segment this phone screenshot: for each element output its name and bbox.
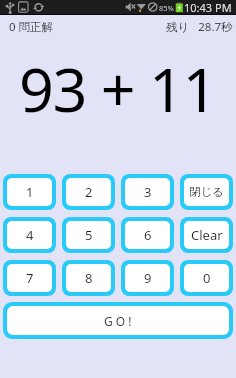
staticText: 閉じる [189,185,225,199]
button[interactable]: 7 [7,264,52,292]
button[interactable]: 1 [7,178,52,206]
staticText: 0 [203,269,211,287]
staticText: 残り 28.7秒 [166,19,233,35]
staticText: 9 [144,269,152,287]
button[interactable]: Clear [184,221,229,249]
button[interactable]: G O ! [7,306,229,335]
button[interactable]: 3 [125,178,170,206]
button[interactable]: 2 [66,178,111,206]
button[interactable]: 8 [66,264,111,292]
staticText: 6 [144,226,152,244]
staticText: 2 [85,183,93,201]
staticText: 8 [85,269,93,287]
staticText: 4 [26,226,34,244]
button[interactable]: 9 [125,264,170,292]
button[interactable]: 5 [66,221,111,249]
staticText: G O ! [104,313,132,329]
button[interactable]: 閉じる [184,178,229,206]
staticText: 5 [85,226,93,244]
staticText: 10:43 PM [184,0,232,15]
staticText: 93 + 11 [19,47,217,127]
staticText: 1 [26,183,34,201]
button[interactable]: 0 [184,264,229,292]
staticText: 0 問正解 [9,19,54,35]
button[interactable]: 6 [125,221,170,249]
button[interactable]: 4 [7,221,52,249]
staticText: 3 [144,183,152,201]
staticText: Clear [191,226,223,244]
staticText: 85% [159,3,174,13]
staticText: 7 [26,269,34,287]
